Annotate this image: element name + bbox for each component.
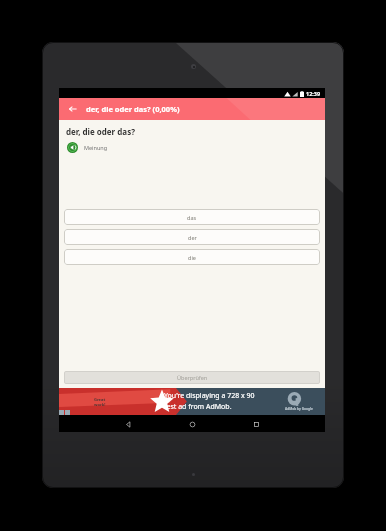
staticText: das <box>187 214 197 221</box>
staticText: Great <box>94 397 106 402</box>
other: Play audio <box>67 142 78 153</box>
button[interactable]: die <box>64 249 320 265</box>
staticText: der <box>188 234 197 241</box>
button[interactable]: Great <box>59 388 325 415</box>
staticText: Überprüfen <box>177 374 208 381</box>
staticText: You're displaying a 728 x 90 <box>164 391 255 401</box>
staticText: test ad from AdMob. <box>164 402 232 412</box>
staticText: work! <box>94 402 106 407</box>
staticText: die <box>188 254 196 261</box>
button[interactable]: Recent apps <box>249 417 263 431</box>
button[interactable]: der <box>64 229 320 245</box>
button[interactable]: Play audio <box>67 142 108 153</box>
button[interactable]: Home <box>185 417 199 431</box>
staticText: AdMob by Google <box>285 407 313 411</box>
button[interactable]: das <box>64 209 320 225</box>
staticText: 12:39 <box>306 90 321 97</box>
button[interactable]: Überprüfen <box>64 371 320 384</box>
staticText: der, die oder das? (0,00%) <box>86 104 180 114</box>
button[interactable]: Back <box>66 102 80 116</box>
staticText: der, die oder das? <box>66 126 135 137</box>
staticText: Meinung <box>84 144 108 151</box>
button[interactable]: Back <box>121 417 135 431</box>
